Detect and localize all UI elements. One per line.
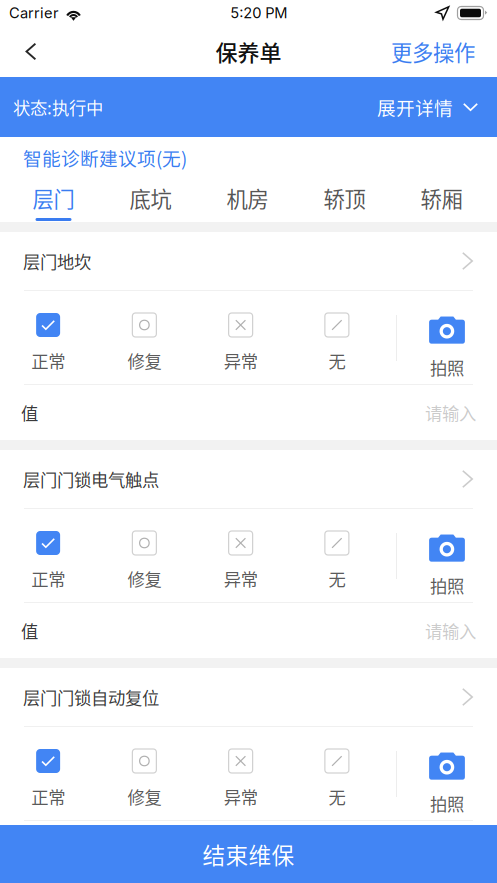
button[interactable]: 拍照 — [397, 313, 497, 380]
button[interactable]: 正常 — [0, 531, 96, 591]
button[interactable]: 正常 — [0, 313, 96, 373]
staticText: 机房 — [226, 183, 268, 213]
staticText: 拍照 — [430, 791, 464, 816]
button[interactable]: 异常 — [192, 313, 289, 373]
staticText: 正常 — [31, 784, 65, 809]
staticText: 异常 — [224, 784, 258, 809]
staticText: 保养单 — [215, 36, 281, 67]
staticText: 无 — [328, 348, 345, 373]
staticText: 展开详情 — [377, 93, 453, 120]
staticText: 5:20 PM — [230, 4, 287, 22]
button[interactable]: 修复 — [96, 313, 192, 373]
staticText: 正常 — [31, 566, 65, 591]
button[interactable]: 异常 — [192, 749, 289, 809]
staticText: Carrier — [9, 4, 59, 22]
button[interactable]: 结束维保 — [0, 825, 497, 883]
staticText: 拍照 — [430, 573, 464, 598]
staticText: 轿顶 — [323, 183, 365, 213]
button[interactable]: 无 — [289, 749, 385, 809]
staticText: 修复 — [127, 566, 161, 591]
button[interactable]: 返回 — [0, 27, 62, 75]
staticText: 智能诊断建议项(无) — [23, 144, 187, 171]
button[interactable]: 层门门锁电气触点 — [0, 450, 497, 508]
staticText: 修复 — [127, 784, 161, 809]
staticText: 更多操作 — [391, 36, 475, 67]
button[interactable]: 层门门锁自动复位 — [0, 668, 497, 726]
button[interactable]: 正常 — [0, 749, 96, 809]
staticText: 状态:执行中 — [13, 94, 103, 120]
button[interactable]: 机房 — [199, 178, 296, 222]
staticText: 层门门锁电气触点 — [23, 466, 159, 492]
button[interactable]: 层门 — [5, 178, 102, 222]
button[interactable]: 轿厢 — [393, 178, 490, 222]
staticText: 值 — [21, 618, 38, 643]
button[interactable]: 底坑 — [102, 178, 199, 222]
staticText: 层门门锁自动复位 — [23, 684, 159, 710]
staticText: 层门 — [32, 183, 74, 213]
staticText: 无 — [328, 566, 345, 591]
button[interactable]: 轿顶 — [296, 178, 393, 222]
staticText: 正常 — [31, 348, 65, 373]
button[interactable]: 无 — [289, 313, 385, 373]
button[interactable]: 修复 — [96, 531, 192, 591]
staticText: 请输入 — [425, 400, 476, 425]
button[interactable]: 无 — [289, 531, 385, 591]
staticText: 请输入 — [425, 618, 476, 643]
staticText: 无 — [328, 784, 345, 809]
staticText: 底坑 — [129, 183, 171, 213]
button[interactable]: 智能诊断建议项(无) — [0, 137, 497, 178]
staticText: 异常 — [224, 348, 258, 373]
button[interactable]: 值 — [0, 603, 497, 658]
button[interactable]: 值 — [0, 385, 497, 440]
button[interactable]: 修复 — [96, 749, 192, 809]
staticText: 层门地坎 — [23, 248, 91, 274]
staticText: 拍照 — [430, 355, 464, 380]
staticText: 值 — [21, 400, 38, 425]
staticText: 异常 — [224, 566, 258, 591]
button[interactable]: 层门地坎 — [0, 232, 497, 290]
button[interactable]: 拍照 — [397, 531, 497, 598]
staticText: 修复 — [127, 348, 161, 373]
staticText: 轿厢 — [420, 183, 462, 213]
button[interactable]: 拍照 — [397, 749, 497, 816]
button[interactable]: 更多操作 — [369, 27, 497, 75]
button[interactable]: 异常 — [192, 531, 289, 591]
staticText: 结束维保 — [202, 838, 294, 870]
button[interactable]: 展开详情 — [377, 84, 497, 130]
